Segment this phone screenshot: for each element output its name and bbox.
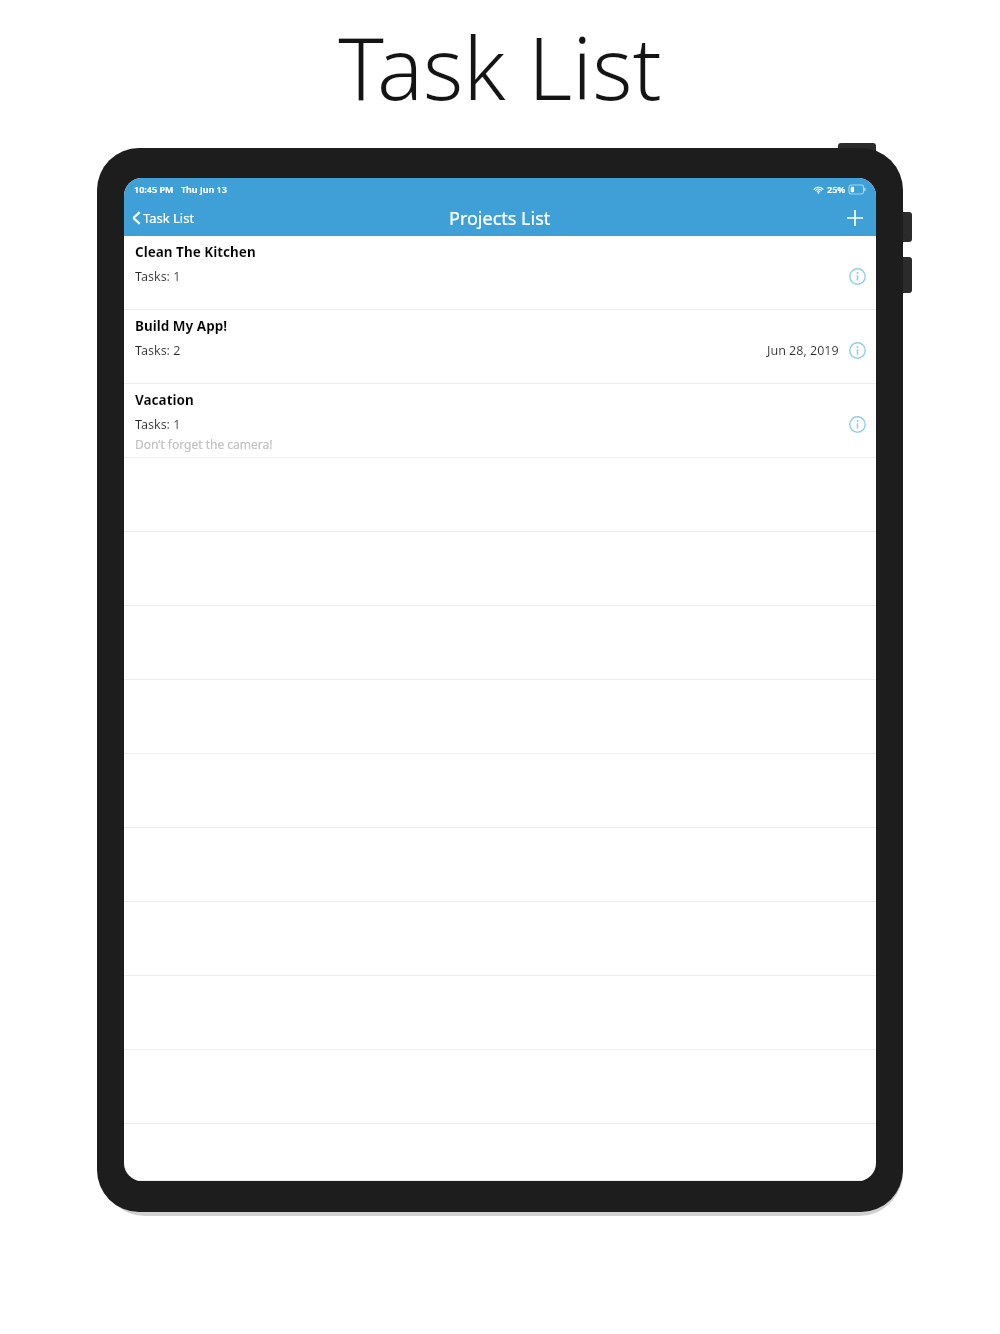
staticText: Task List <box>338 8 662 125</box>
staticText: 10:45 PM <box>134 183 174 195</box>
button[interactable]: Task List <box>129 204 198 232</box>
button[interactable] <box>124 1124 876 1181</box>
button[interactable]: Vacation <box>124 384 876 458</box>
button[interactable]: Clean The Kitchen <box>124 236 876 310</box>
staticText: Vacation <box>135 391 194 409</box>
button[interactable]: Project details <box>845 264 869 288</box>
staticText: Clean The Kitchen <box>135 243 256 261</box>
button[interactable]: Project details <box>845 412 869 436</box>
staticText: Thu Jun 13 <box>181 183 227 195</box>
staticText: 25% <box>827 183 846 195</box>
staticText: Build My App! <box>135 317 228 335</box>
staticText: Tasks: 2 <box>135 342 181 359</box>
staticText: Tasks: 1 <box>135 268 181 285</box>
staticText: Tasks: 1 <box>135 416 181 433</box>
staticText: Task List <box>143 209 195 227</box>
button[interactable]: Add project <box>840 203 870 233</box>
staticText: Don’t forget the camera! <box>135 436 273 452</box>
staticText: Projects List <box>449 206 551 231</box>
button[interactable]: Build My App! <box>124 310 876 384</box>
button[interactable]: Project details <box>845 338 869 362</box>
staticText: Jun 28, 2019 <box>767 342 839 359</box>
